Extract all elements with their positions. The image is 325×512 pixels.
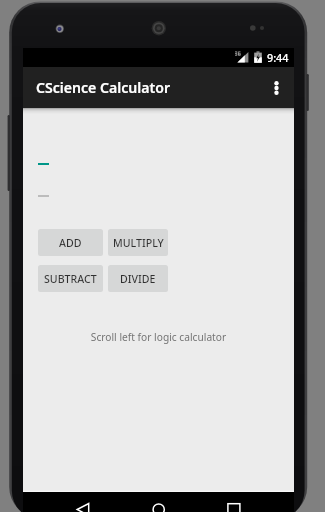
staticText: SUBTRACT [44, 272, 97, 286]
button[interactable]: ADD [38, 229, 103, 256]
button[interactable]: SUBTRACT [38, 265, 103, 292]
staticText: ADD [59, 236, 82, 250]
staticText: DIVIDE [120, 272, 156, 286]
staticText: 9:44 [267, 50, 289, 65]
button[interactable]: Home [146, 492, 172, 512]
staticText: CScience Calculator [36, 78, 171, 97]
button[interactable]: Back [70, 492, 96, 512]
button[interactable]: DIVIDE [108, 265, 168, 292]
button[interactable]: More options [261, 67, 291, 108]
staticText: Scroll left for logic calculator [38, 330, 279, 344]
button[interactable]: MULTIPLY [108, 229, 168, 256]
button[interactable]: Recent apps [221, 492, 247, 512]
staticText: MULTIPLY [113, 236, 164, 250]
